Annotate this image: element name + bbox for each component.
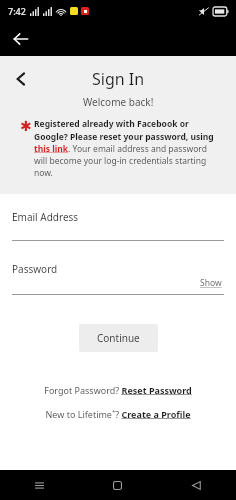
button[interactable]: Back [157,470,236,500]
staticText: 7:42 [8,5,26,17]
button[interactable]: Email Address [0,210,236,241]
staticText: Forgot Password? Reset Password [44,384,192,396]
button[interactable]: Navigate back [6,64,36,94]
button[interactable]: Continue [79,324,158,352]
staticText: Password [12,262,58,276]
button[interactable]: Back [6,24,36,54]
staticText: Registered already with Facebook or Goog… [34,118,216,178]
staticText: Sign In [92,68,145,90]
staticText: Welcome back! [83,95,154,109]
button[interactable]: Show [198,276,224,290]
button[interactable]: Password [0,262,236,295]
button[interactable]: Recent apps [0,470,78,500]
staticText: Continue [97,331,140,345]
staticText: New to Lifetime*? Create a Profile [45,408,191,420]
staticText: ✱ [20,118,32,134]
button[interactable]: Forgot Password? Reset Password [0,384,236,396]
button[interactable]: Home [78,470,157,500]
staticText: Show [200,277,222,289]
staticText: Email Address [12,210,79,224]
button[interactable]: New to Lifetime*? Create a Profile [0,408,236,420]
